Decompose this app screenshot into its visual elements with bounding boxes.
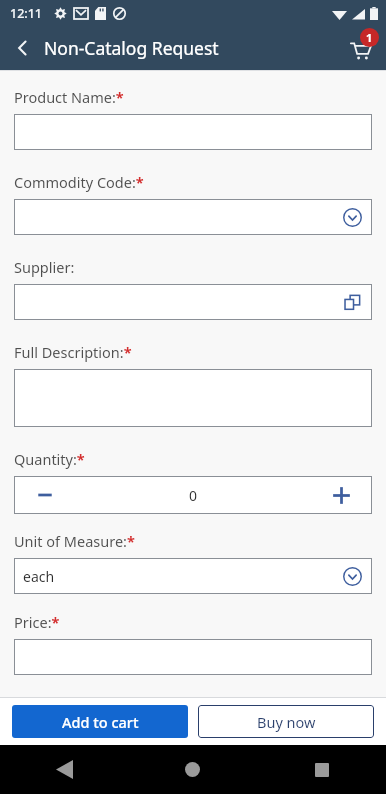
button[interactable]: Recent apps (257, 745, 386, 794)
staticText: 0 (189, 486, 198, 505)
staticText: 12:11 (10, 5, 43, 22)
staticText: Commodity Code:* (14, 172, 144, 192)
button[interactable] (14, 114, 372, 150)
staticText: Price:* (14, 612, 60, 632)
staticText: Quantity:* (14, 449, 85, 469)
button[interactable]: Look up supplier (14, 284, 372, 320)
staticText: Add to cart (62, 712, 139, 732)
button[interactable]: Select commodity code (340, 205, 364, 229)
button[interactable] (14, 369, 372, 427)
staticText: Full Description:* (14, 342, 132, 362)
button[interactable]: Look up supplier (340, 290, 364, 314)
button[interactable]: Increase quantity (310, 476, 372, 514)
button[interactable]: Select unit of measure (340, 564, 364, 588)
staticText: Supplier: (14, 257, 75, 277)
button[interactable]: Back (6, 31, 40, 65)
staticText: Unit of Measure:* (14, 531, 135, 551)
staticText: Non-Catalog Request (44, 36, 219, 60)
staticText: Product Name:* (14, 87, 124, 107)
staticText: each (23, 567, 55, 586)
button[interactable]: Add to cart (12, 705, 188, 738)
button[interactable]: Decrease quantity (14, 476, 76, 514)
button[interactable]: Home (128, 745, 257, 794)
button[interactable]: Buy now (198, 705, 374, 738)
staticText: Buy now (257, 712, 316, 732)
button[interactable] (14, 639, 372, 675)
button[interactable]: Select commodity code (14, 199, 372, 235)
button[interactable]: Back (0, 745, 128, 794)
button[interactable]: each (14, 558, 372, 594)
button[interactable]: Cart, 1 item (340, 28, 380, 68)
staticText: 1 (366, 30, 373, 45)
